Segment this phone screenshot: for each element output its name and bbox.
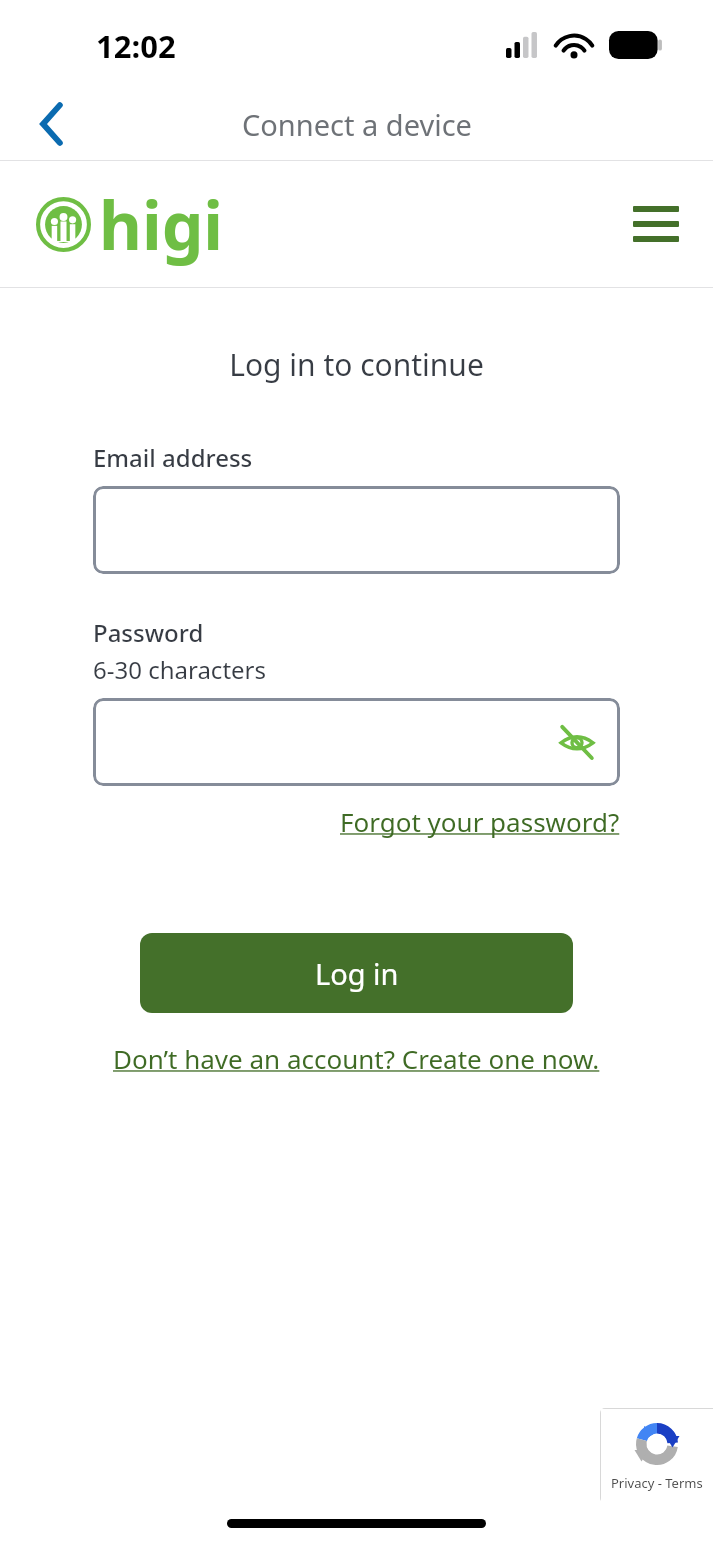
staticText: Log in [315,954,399,993]
button[interactable]: Log in [140,933,573,1013]
staticText: 12:02 [96,25,176,67]
button[interactable]: Email address field [93,486,620,574]
button[interactable]: Don’t have an account? Create one now. [113,1041,600,1076]
staticText: Password [93,616,204,649]
button[interactable]: Forgot your password? [340,804,620,839]
staticText: Log in to continue [0,344,713,385]
staticText: Connect a device [242,105,472,144]
staticText: Email address [93,441,253,474]
button[interactable]: Show password [93,698,620,786]
staticText: higi [99,179,224,269]
button[interactable]: Menu [623,191,689,257]
button[interactable]: Show password [548,713,606,771]
button[interactable]: higi [36,179,224,269]
button[interactable]: Privacy - Terms [600,1408,713,1503]
staticText: Privacy - Terms [611,1474,703,1492]
staticText: 6-30 characters [93,653,266,686]
button[interactable]: Back [24,96,80,152]
